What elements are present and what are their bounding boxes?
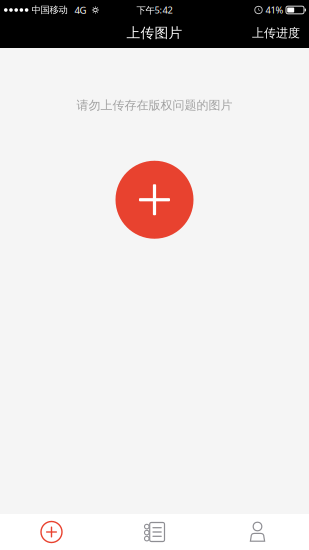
staticText: 下午5:42 bbox=[136, 4, 172, 16]
button[interactable]: 我的作品 bbox=[103, 514, 206, 550]
button[interactable]: 我的 bbox=[206, 514, 309, 550]
staticText: 上传图片 bbox=[126, 25, 182, 41]
staticText: 41% bbox=[265, 4, 283, 16]
staticText: 4G bbox=[74, 4, 86, 16]
button[interactable]: 上传 bbox=[0, 514, 103, 550]
staticText: 请勿上传存在版权问题的图片 bbox=[76, 98, 232, 113]
button[interactable]: 添加图片 bbox=[115, 161, 193, 239]
staticText: 中国移动 bbox=[31, 4, 67, 16]
staticText: 上传进度 bbox=[252, 26, 300, 40]
button[interactable]: 上传进度 bbox=[243, 21, 309, 47]
